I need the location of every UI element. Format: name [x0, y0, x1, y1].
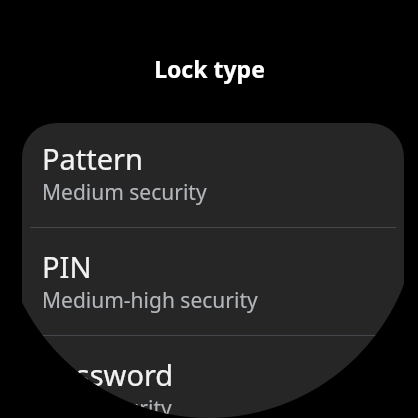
staticText: Medium security: [42, 178, 207, 207]
button[interactable]: PIN: [22, 247, 404, 336]
staticText: Medium-high security: [42, 286, 258, 315]
staticText: Lock type: [154, 53, 265, 84]
button[interactable]: Password: [22, 355, 404, 418]
staticText: Pattern: [42, 139, 144, 178]
staticText: High security: [42, 394, 172, 418]
staticText: Password: [42, 355, 174, 394]
staticText: PIN: [42, 247, 92, 286]
button[interactable]: Pattern: [22, 139, 404, 228]
